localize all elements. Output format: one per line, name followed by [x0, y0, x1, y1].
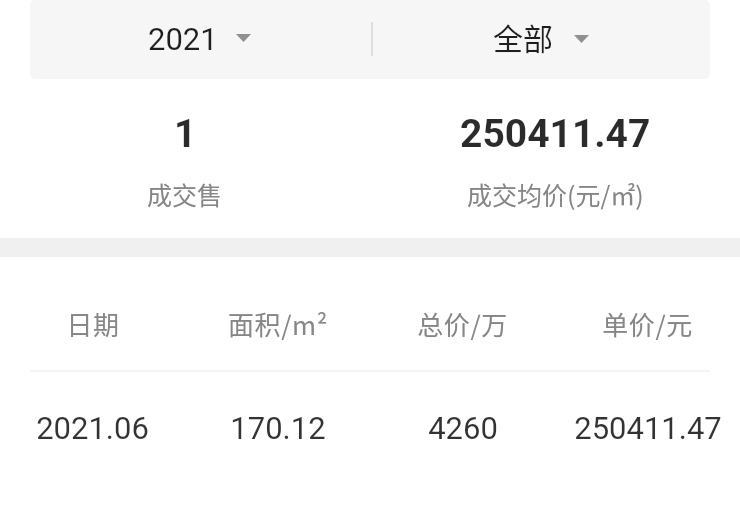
staticText: 成交均价(元/㎡): [467, 176, 644, 212]
staticText: 250411.47: [460, 111, 651, 157]
button[interactable]: 选择年份 2021: [30, 0, 369, 79]
staticText: 日期: [66, 305, 120, 343]
button[interactable]: 2021.06: [0, 392, 740, 464]
staticText: 2021: [148, 21, 218, 57]
staticText: 1: [174, 111, 197, 157]
staticText: 250411.47: [574, 410, 722, 446]
staticText: 170.12: [230, 410, 326, 446]
staticText: 4260: [428, 410, 498, 446]
staticText: 2021.06: [36, 410, 149, 446]
staticText: 全部: [493, 15, 553, 58]
staticText: 单价/元: [602, 305, 693, 343]
staticText: 成交售: [147, 176, 223, 212]
staticText: 总价/万: [417, 305, 508, 343]
staticText: 面积/m²: [228, 305, 328, 343]
button[interactable]: 选择类型 全部: [371, 0, 710, 79]
